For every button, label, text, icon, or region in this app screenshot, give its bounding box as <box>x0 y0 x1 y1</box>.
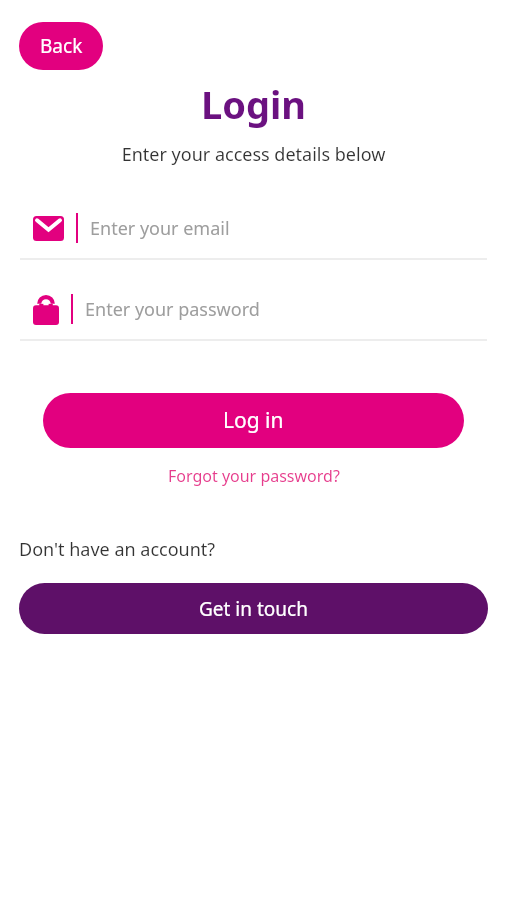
other: Password <box>33 294 59 325</box>
button[interactable]: Get in touch <box>19 583 488 634</box>
button[interactable]: Password <box>0 286 507 341</box>
other: Email <box>33 216 64 241</box>
staticText: Back <box>40 33 83 59</box>
staticText: Get in touch <box>199 596 308 622</box>
staticText: Enter your password <box>85 297 260 322</box>
button[interactable]: Back <box>19 22 103 70</box>
staticText: Enter your email <box>90 216 230 241</box>
button[interactable]: Email <box>0 205 507 260</box>
staticText: Enter your access details below <box>0 142 507 167</box>
button[interactable]: Forgot your password? <box>0 465 507 487</box>
staticText: Log in <box>223 406 284 435</box>
staticText: Forgot your password? <box>168 465 340 487</box>
staticText: Login <box>0 78 507 130</box>
staticText: Don't have an account? <box>19 537 216 562</box>
button[interactable]: Log in <box>43 393 464 448</box>
